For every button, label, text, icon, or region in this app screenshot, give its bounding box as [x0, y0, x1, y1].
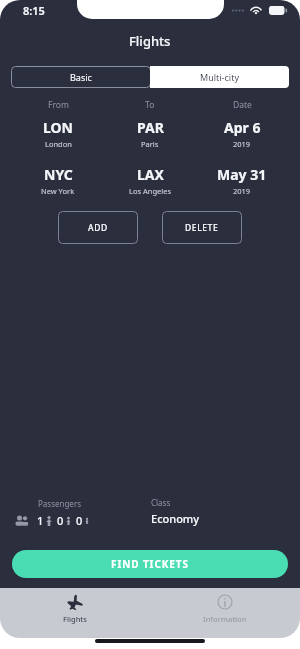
staticText: Apr 6	[224, 118, 261, 137]
staticText: 2019	[233, 186, 251, 196]
staticText: 0	[76, 513, 83, 528]
staticText: LON	[43, 118, 74, 137]
button[interactable]: FIND TICKETS	[12, 550, 288, 578]
staticText: New York	[41, 186, 75, 196]
staticText: NYC	[44, 165, 73, 184]
staticText: From	[48, 99, 69, 111]
staticText: Class	[151, 497, 171, 508]
button[interactable]: Flights	[0, 588, 150, 638]
staticText: Flights	[63, 614, 87, 624]
staticText: To	[145, 99, 155, 111]
staticText: 1	[37, 513, 44, 528]
staticText: DELETE	[185, 222, 219, 234]
other: Flights	[67, 594, 83, 610]
staticText: Economy	[151, 511, 200, 526]
button[interactable]: Basic	[11, 66, 150, 88]
staticText: 2019	[233, 139, 251, 149]
staticText: 8:15	[23, 3, 45, 18]
staticText: Flights	[129, 32, 171, 50]
other: Information	[217, 594, 233, 610]
staticText: ADD	[88, 222, 108, 234]
button[interactable]: Multi-city	[150, 66, 289, 88]
button[interactable]: ADD	[58, 211, 138, 244]
staticText: Los Angeles	[129, 186, 172, 196]
staticText: London	[45, 139, 72, 149]
button[interactable]: DELETE	[162, 211, 242, 244]
staticText: FIND TICKETS	[111, 557, 189, 571]
staticText: 0	[57, 513, 64, 528]
staticText: Information	[203, 614, 247, 624]
staticText: Paris	[141, 139, 159, 149]
staticText: Multi-city	[200, 71, 239, 83]
staticText: May 31	[217, 165, 267, 184]
button[interactable]: Information	[150, 588, 300, 638]
staticText: Passengers	[38, 498, 82, 509]
staticText: LAX	[137, 165, 164, 184]
staticText: Date	[233, 99, 252, 111]
other: Passengers	[14, 514, 30, 527]
staticText: PAR	[137, 118, 164, 137]
staticText: Basic	[70, 71, 92, 83]
